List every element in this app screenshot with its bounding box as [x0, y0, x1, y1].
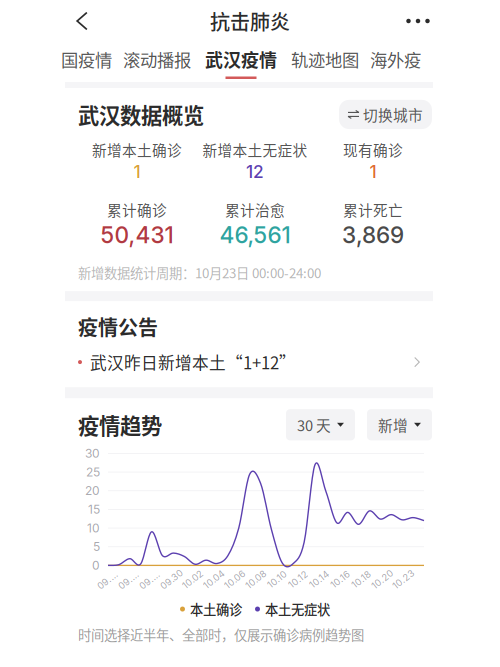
- staticText: 疫情趋势: [78, 409, 162, 440]
- staticText: 10.08: [244, 574, 268, 585]
- button[interactable]: 新增: [367, 409, 432, 440]
- staticText: 0: [92, 558, 100, 573]
- staticText: 10.16: [329, 574, 351, 585]
- staticText: 10.23: [391, 574, 416, 585]
- staticText: 1: [369, 161, 376, 182]
- staticText: 武汉数据概览: [78, 99, 204, 130]
- button[interactable]: 轨迹地图: [283, 42, 367, 82]
- staticText: 50,431: [100, 221, 173, 249]
- staticText: 10.20: [370, 574, 395, 585]
- button[interactable]: 国疫情: [58, 42, 115, 82]
- staticText: 新增本土确诊: [92, 139, 182, 160]
- staticText: 新增: [378, 414, 408, 435]
- staticText: 国疫情: [61, 47, 112, 72]
- staticText: 1: [133, 161, 140, 182]
- button[interactable]: 切换城市: [339, 100, 432, 129]
- staticText: 本土无症状: [265, 599, 330, 619]
- staticText: 10.14: [308, 574, 330, 585]
- staticText: 15: [88, 502, 100, 517]
- staticText: 切换城市: [363, 104, 423, 125]
- button[interactable]: 更多: [398, 0, 438, 42]
- staticText: 09.24: [95, 574, 121, 585]
- staticText: 25: [86, 465, 100, 479]
- staticText: 时间选择近半年、全部时，仅展示确诊病例趋势图: [78, 625, 364, 644]
- staticText: 10.18: [350, 574, 372, 585]
- staticText: 抗击肺炎: [210, 6, 290, 35]
- staticText: 30: [85, 446, 100, 461]
- staticText: 09.28: [138, 574, 164, 585]
- staticText: 10.06: [223, 574, 247, 585]
- button[interactable]: 武汉昨日新增本土“1+12”: [78, 341, 432, 383]
- staticText: 12: [246, 161, 264, 182]
- staticText: 10.04: [202, 574, 226, 585]
- staticText: 累计死亡: [343, 199, 403, 220]
- staticText: 20: [85, 483, 100, 498]
- staticText: 10.02: [181, 574, 205, 585]
- button[interactable]: 滚动播报: [115, 42, 199, 82]
- staticText: 3,869: [342, 221, 404, 249]
- staticText: 本土确诊: [190, 599, 242, 619]
- staticText: 5: [93, 539, 100, 554]
- staticText: 10.10: [266, 574, 288, 585]
- staticText: 09.26: [117, 574, 143, 585]
- staticText: 累计治愈: [225, 199, 285, 220]
- staticText: 武汉昨日新增本土“1+12”: [90, 350, 296, 374]
- staticText: 新增数据统计周期：10月23日 00:00-24:00: [78, 263, 321, 282]
- button[interactable]: 返回: [62, 0, 102, 42]
- staticText: 疫情公告: [78, 312, 158, 341]
- staticText: 滚动播报: [123, 47, 191, 72]
- staticText: 累计确诊: [107, 199, 167, 220]
- staticText: 09.30: [159, 574, 185, 585]
- button[interactable]: 武汉疫情: [199, 42, 283, 82]
- staticText: 海外疫: [370, 47, 421, 72]
- staticText: 30 天: [297, 414, 331, 435]
- button[interactable]: 海外疫: [367, 42, 424, 82]
- staticText: 46,561: [219, 221, 290, 249]
- staticText: 轨迹地图: [291, 47, 359, 72]
- staticText: 10.12: [287, 574, 309, 585]
- staticText: 现有确诊: [343, 139, 403, 160]
- staticText: 武汉疫情: [205, 46, 277, 72]
- staticText: 10: [87, 521, 100, 535]
- staticText: 新增本土无症状: [202, 139, 307, 160]
- button[interactable]: 30 天: [286, 409, 355, 440]
